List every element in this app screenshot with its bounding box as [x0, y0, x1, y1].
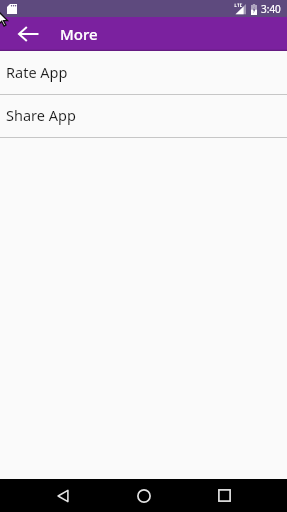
staticText: Rate App [6, 62, 68, 82]
button[interactable]: Navigate up [13, 19, 43, 49]
button[interactable]: Recent apps [184, 479, 265, 512]
button[interactable]: Share App [0, 95, 287, 138]
staticText: Share App [6, 105, 76, 125]
staticText: More [60, 24, 98, 44]
staticText: 3:40 [261, 2, 281, 16]
button[interactable]: Back [23, 479, 103, 512]
button[interactable]: Rate App [0, 51, 287, 95]
button[interactable]: Home [103, 479, 184, 512]
